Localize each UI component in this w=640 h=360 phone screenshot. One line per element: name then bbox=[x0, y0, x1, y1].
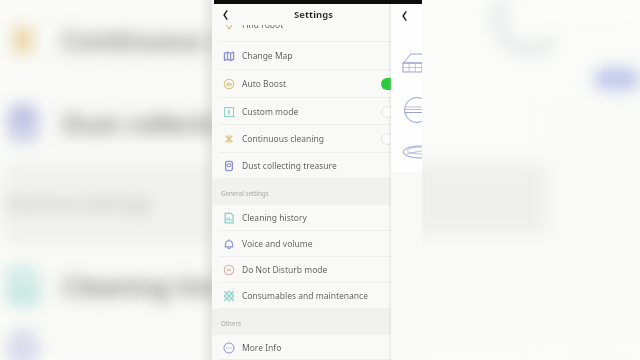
staticText: Consumables and maintenance bbox=[242, 290, 368, 302]
staticText: Dust collecting treasure bbox=[62, 105, 292, 140]
button[interactable]: Change Map bbox=[212, 42, 415, 70]
staticText: Voice and volume bbox=[242, 238, 313, 250]
button[interactable]: Back bbox=[217, 7, 233, 23]
staticText: General settings bbox=[221, 189, 269, 197]
staticText: Settings bbox=[294, 8, 333, 21]
button[interactable]: Custom mode bbox=[212, 98, 415, 125]
staticText: Others bbox=[221, 319, 241, 327]
button[interactable]: Consumables and maintenance bbox=[212, 283, 415, 309]
staticText: Auto Boost bbox=[242, 78, 287, 90]
button[interactable]: Auto Boost bbox=[212, 70, 415, 98]
staticText: Cleaning history bbox=[242, 212, 307, 224]
button[interactable]: Voice and volume bbox=[212, 231, 415, 257]
staticText: Custom mode bbox=[242, 106, 299, 118]
button[interactable]: Do Not Disturb mode bbox=[212, 257, 415, 283]
button[interactable]: Continuous cleaning bbox=[212, 125, 415, 153]
staticText: Change Map bbox=[242, 50, 293, 62]
button[interactable]: Cleaning history bbox=[212, 205, 415, 231]
staticText: Do Not Disturb mode bbox=[242, 264, 328, 276]
button[interactable]: Toggle off bbox=[381, 106, 403, 118]
staticText: Continuous cleaning bbox=[62, 22, 292, 57]
button[interactable]: Toggle off bbox=[381, 133, 403, 145]
staticText: Find robot bbox=[242, 25, 284, 31]
button[interactable]: Back bbox=[396, 8, 412, 24]
staticText: More Info bbox=[242, 342, 282, 354]
staticText: Continuous cleaning bbox=[242, 133, 324, 145]
button[interactable]: More Info bbox=[212, 335, 415, 360]
staticText: Dust collecting treasure bbox=[242, 160, 337, 172]
staticText: Cleaning history bbox=[62, 268, 261, 303]
button[interactable]: Dust collecting treasure bbox=[212, 153, 415, 179]
button[interactable]: Find robot bbox=[212, 25, 415, 42]
button[interactable]: Toggle on bbox=[381, 78, 403, 90]
